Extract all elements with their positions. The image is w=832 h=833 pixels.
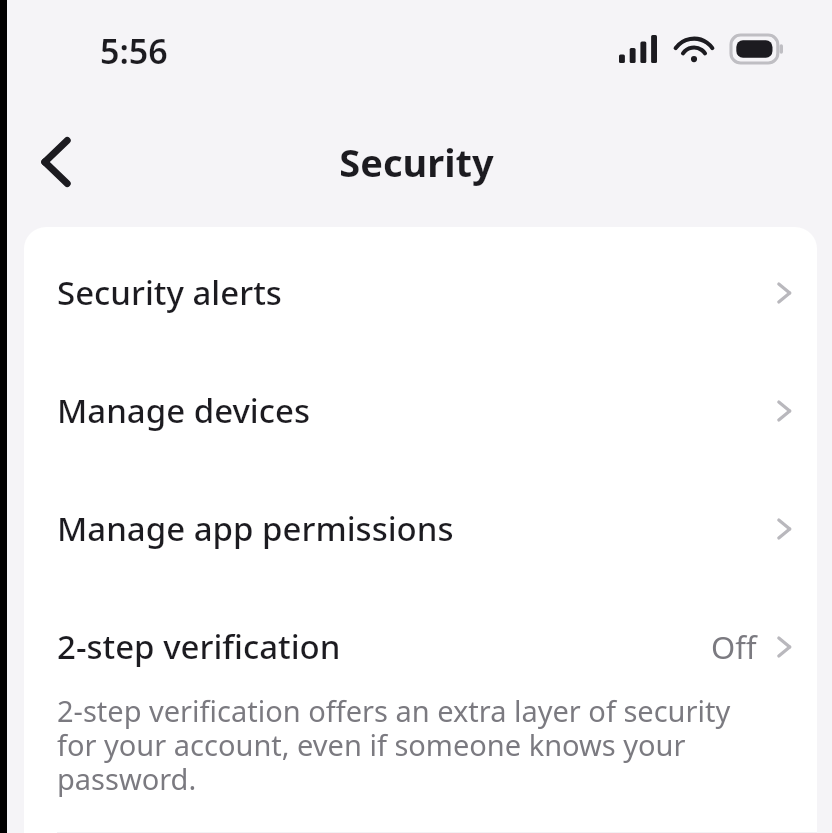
button[interactable]: Manage app permissions xyxy=(24,433,817,551)
button[interactable]: Security alerts xyxy=(24,227,817,315)
staticText: Manage app permissions xyxy=(57,506,454,551)
staticText: Manage devices xyxy=(57,388,310,433)
staticText: 2-step verification offers an extra laye… xyxy=(57,691,769,798)
staticText: Security xyxy=(339,136,494,188)
button[interactable]: Manage devices xyxy=(24,315,817,433)
staticText: Security alerts xyxy=(57,270,282,315)
staticText: 2-step verification xyxy=(57,624,341,669)
staticText: Off xyxy=(711,626,757,668)
button[interactable]: 2-step verification xyxy=(24,551,817,669)
staticText: 5:56 xyxy=(100,28,168,74)
button[interactable]: Back xyxy=(20,126,92,198)
